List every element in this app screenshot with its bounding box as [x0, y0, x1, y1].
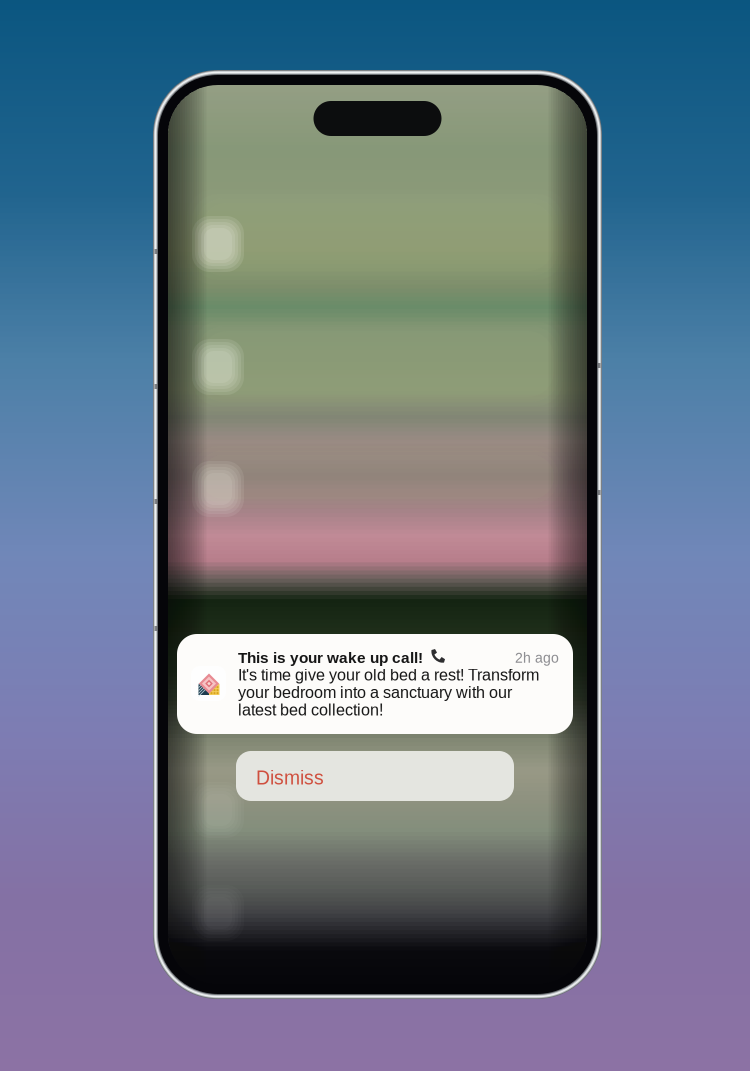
staticText: Dismiss: [256, 767, 324, 789]
button[interactable]: This is your wake up call!: [177, 634, 573, 734]
staticText: It's time give your old bed a rest! Tran…: [238, 666, 539, 719]
staticText: This is your wake up call!: [238, 649, 423, 666]
staticText: 2h ago: [515, 650, 559, 666]
button[interactable]: Dismiss: [236, 751, 514, 801]
